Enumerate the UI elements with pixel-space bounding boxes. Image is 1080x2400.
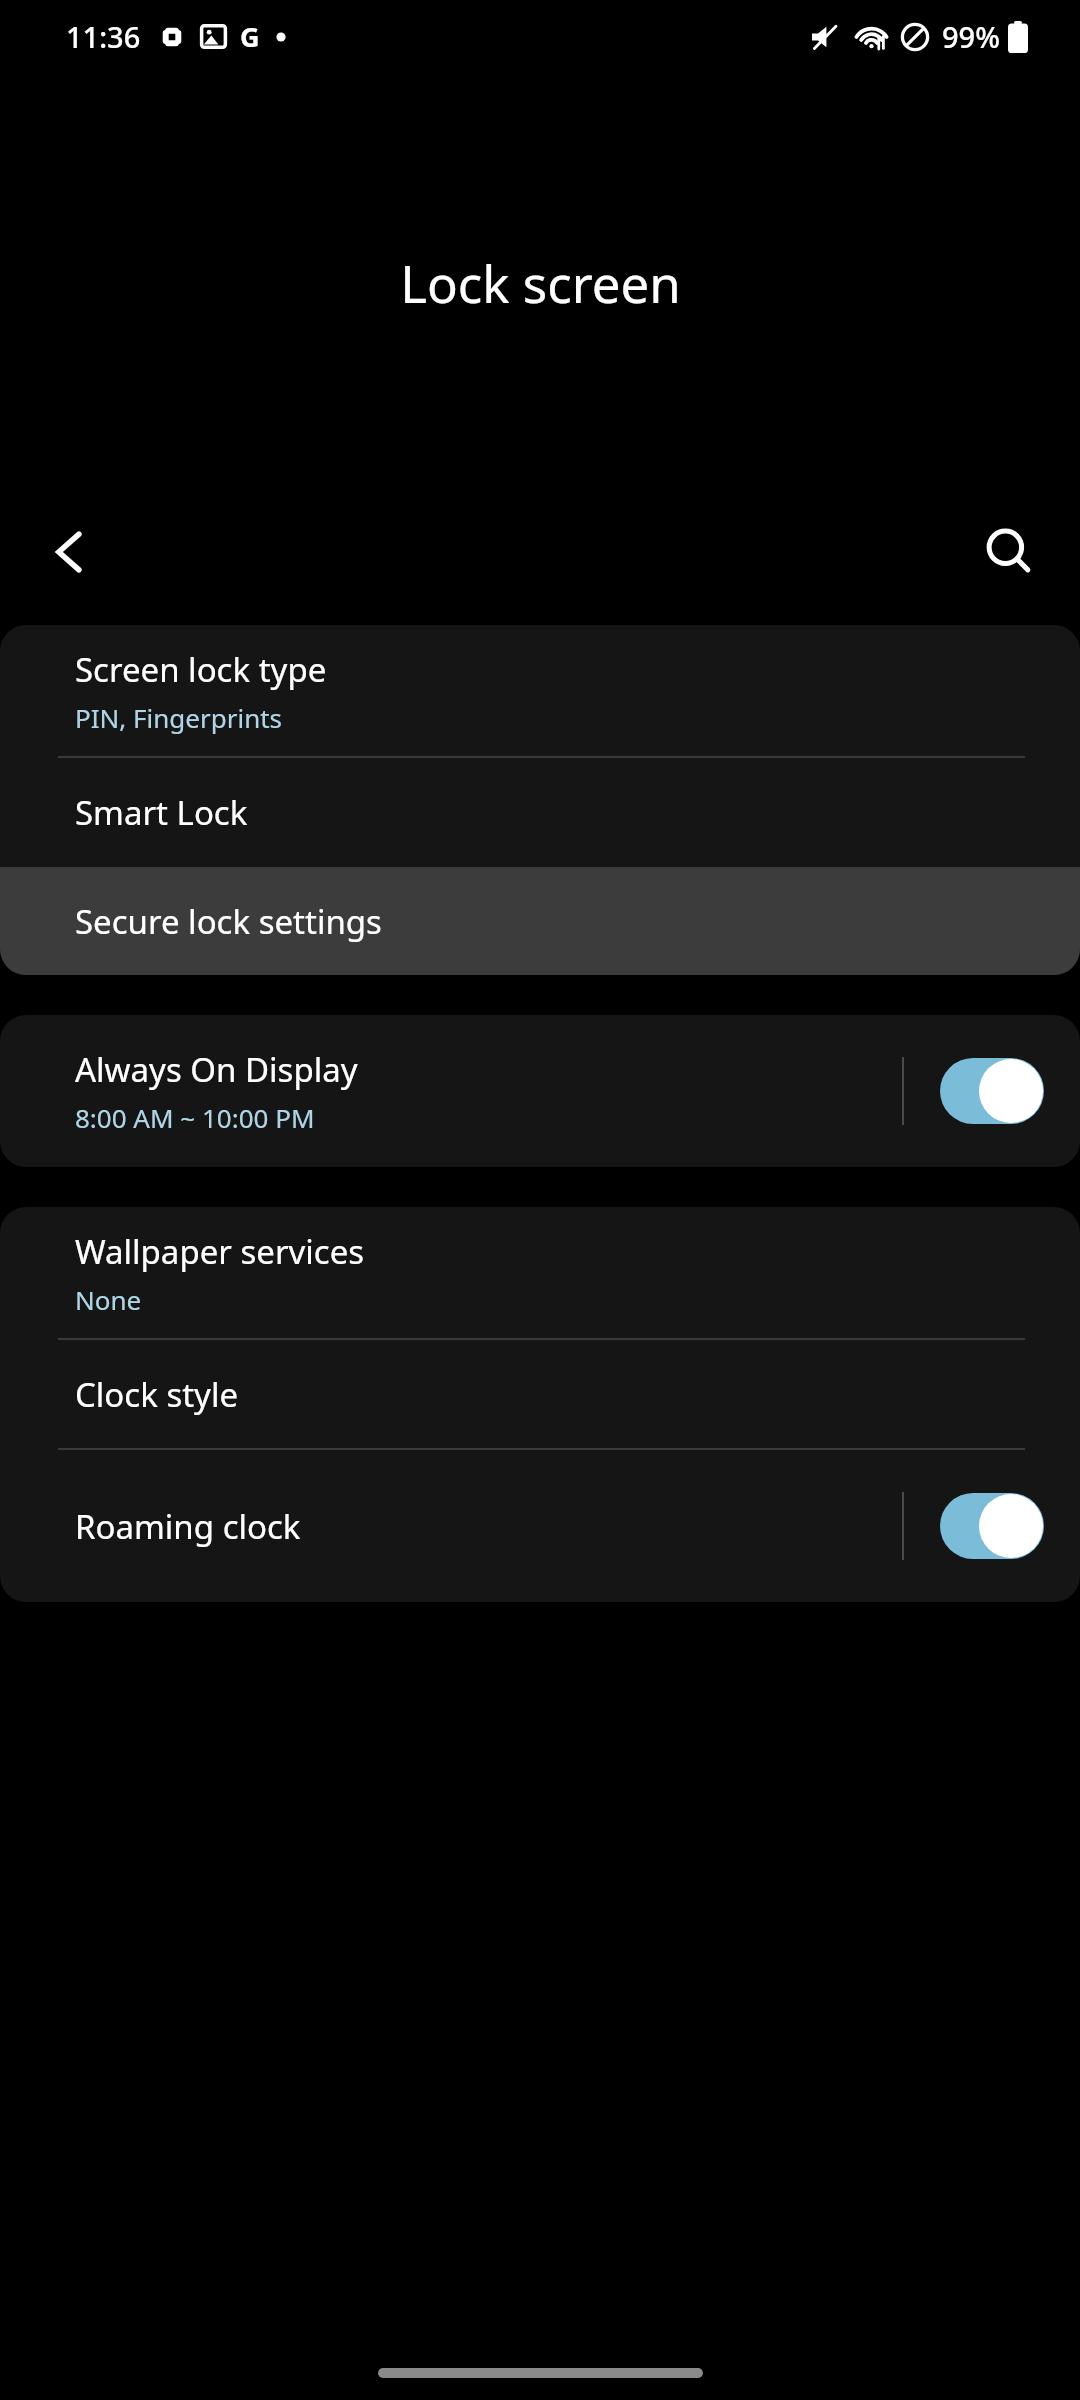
staticText: 11:36: [66, 17, 141, 56]
staticText: None: [75, 1282, 142, 1317]
button[interactable]: Clock style: [0, 1340, 1080, 1448]
button[interactable]: Always On Display: [0, 1047, 902, 1135]
staticText: Clock style: [75, 1372, 239, 1417]
button[interactable]: Roaming clock toggle: [904, 1450, 1080, 1602]
button[interactable]: Smart Lock: [0, 758, 1080, 867]
staticText: Lock screen: [400, 248, 681, 317]
staticText: G: [240, 18, 260, 55]
staticText: Smart Lock: [75, 790, 248, 835]
staticText: Roaming clock: [75, 1504, 301, 1549]
button[interactable]: Secure lock settings: [0, 867, 1080, 975]
staticText: Always On Display: [75, 1047, 358, 1092]
staticText: Wallpaper services: [75, 1229, 365, 1274]
staticText: 99%: [942, 17, 1000, 56]
button[interactable]: Back: [28, 510, 112, 594]
button[interactable]: Wallpaper services: [0, 1207, 1080, 1338]
button[interactable]: Roaming clock: [0, 1450, 902, 1602]
button[interactable]: Always On Display toggle: [904, 1015, 1080, 1167]
staticText: Screen lock type: [75, 647, 327, 692]
staticText: PIN, Fingerprints: [75, 700, 283, 735]
button[interactable]: Search: [968, 510, 1052, 594]
button[interactable]: Screen lock type: [0, 625, 1080, 756]
staticText: 8:00 AM ~ 10:00 PM: [75, 1100, 315, 1135]
staticText: Secure lock settings: [75, 899, 382, 944]
